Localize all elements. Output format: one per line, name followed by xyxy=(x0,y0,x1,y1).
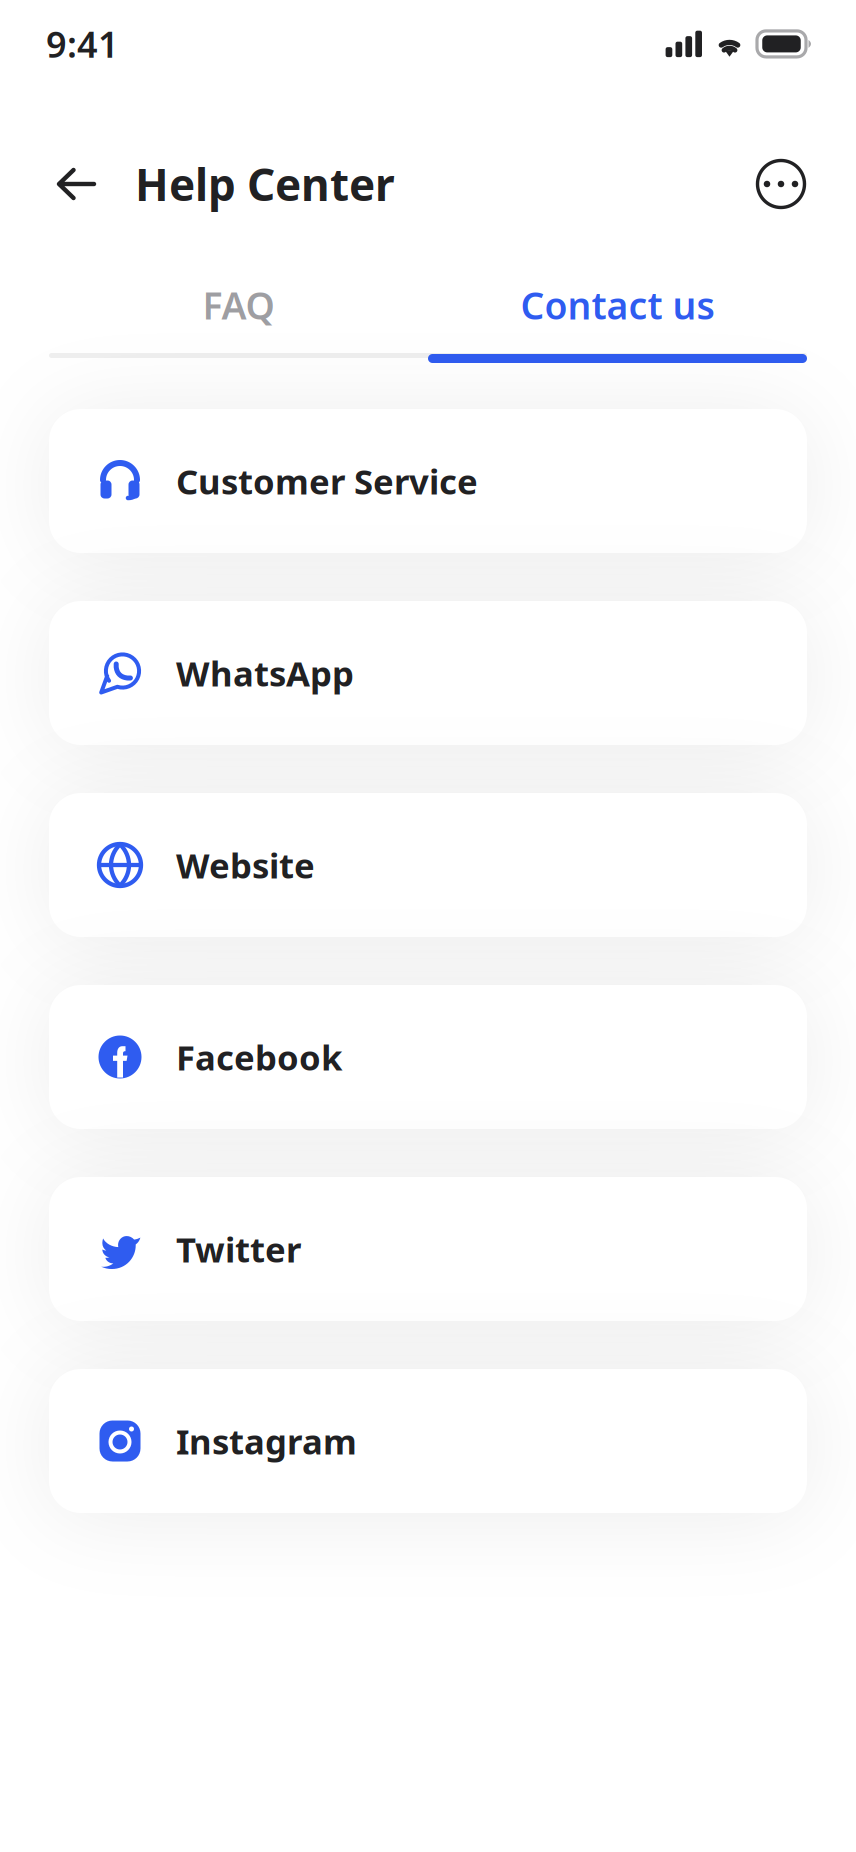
button[interactable]: FAQ xyxy=(49,282,428,352)
staticText: Instagram xyxy=(176,1418,357,1464)
staticText: WhatsApp xyxy=(176,650,354,696)
button[interactable]: More options xyxy=(745,148,817,220)
button[interactable]: Website xyxy=(49,793,807,937)
button[interactable]: Customer Service xyxy=(49,409,807,553)
staticText: Facebook xyxy=(176,1034,342,1080)
button[interactable]: Instagram xyxy=(49,1369,807,1513)
staticText: 9:41 xyxy=(46,20,119,68)
staticText: Help Center xyxy=(135,155,395,213)
staticText: Customer Service xyxy=(176,458,478,504)
staticText: Website xyxy=(176,842,315,888)
button[interactable]: WhatsApp xyxy=(49,601,807,745)
staticText: Twitter xyxy=(176,1226,301,1272)
staticText: Contact us xyxy=(520,280,714,330)
staticText: FAQ xyxy=(202,280,274,330)
button[interactable]: Facebook xyxy=(49,985,807,1129)
button[interactable]: Contact us xyxy=(428,282,807,352)
button[interactable]: Back xyxy=(40,148,112,220)
button[interactable]: Twitter xyxy=(49,1177,807,1321)
